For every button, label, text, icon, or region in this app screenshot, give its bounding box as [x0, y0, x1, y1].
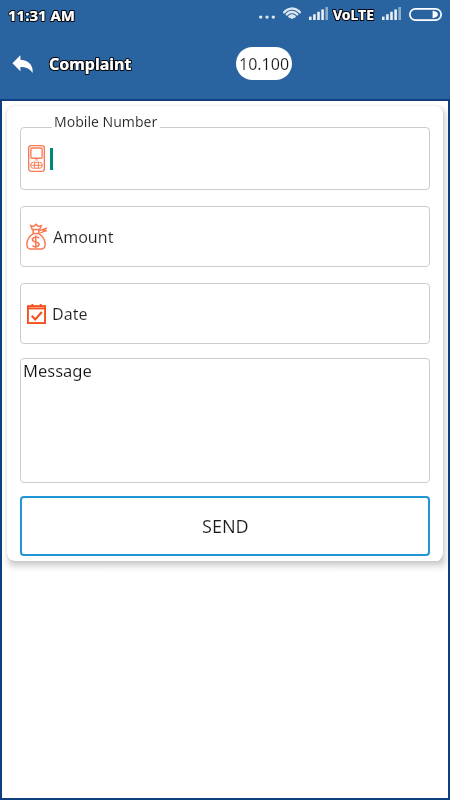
staticText: VoLTE	[332, 4, 374, 23]
staticText: VoLTE	[334, 6, 376, 25]
staticText: Complaint	[48, 53, 131, 75]
staticText: 11:31 AM	[9, 6, 76, 26]
button[interactable]: Amount	[20, 206, 430, 267]
staticText: VoLTE	[333, 4, 375, 23]
staticText: Message	[23, 359, 92, 381]
staticText: Complaint	[49, 53, 132, 75]
staticText: VoLTE	[332, 5, 374, 24]
staticText: Complaint	[49, 52, 132, 74]
staticText: VoLTE	[333, 6, 375, 25]
button[interactable]: SEND	[20, 496, 430, 556]
staticText: Complaint	[50, 53, 133, 75]
staticText: Complaint	[50, 52, 133, 74]
button[interactable]	[20, 127, 430, 190]
staticText: 11:31 AM	[7, 6, 74, 26]
staticText: Amount	[53, 226, 114, 248]
button[interactable]: Date	[20, 283, 430, 344]
staticText: Complaint	[50, 54, 133, 76]
staticText: Mobile Number	[54, 112, 158, 131]
staticText: 11:31 AM	[7, 5, 74, 25]
button[interactable]: Back	[6, 48, 38, 80]
staticText: VoLTE	[334, 4, 376, 23]
staticText: 11:31 AM	[9, 4, 76, 24]
staticText: 11:31 AM	[9, 5, 76, 25]
staticText: 11:31 AM	[7, 4, 74, 24]
staticText: 11:31 AM	[8, 4, 75, 24]
staticText: Date	[52, 303, 88, 325]
button[interactable]: 10.100	[236, 47, 292, 80]
button[interactable]: Message	[20, 358, 430, 483]
staticText: SEND	[202, 514, 249, 539]
staticText: VoLTE	[333, 5, 375, 24]
staticText: 11:31 AM	[8, 6, 75, 26]
staticText: Complaint	[48, 54, 131, 76]
staticText: Complaint	[48, 52, 131, 74]
staticText: 10.100	[239, 53, 290, 75]
staticText: Complaint	[49, 54, 132, 76]
staticText: VoLTE	[332, 6, 374, 25]
staticText: 11:31 AM	[8, 5, 75, 25]
staticText: VoLTE	[334, 5, 376, 24]
